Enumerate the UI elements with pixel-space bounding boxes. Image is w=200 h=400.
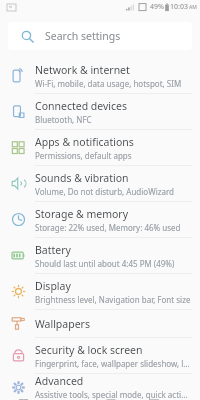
- staticText: 10:03: [170, 2, 188, 12]
- button[interactable]: Display: [0, 274, 200, 309]
- staticText: Apps & notifications: [35, 135, 134, 149]
- staticText: Should last until about 4:45 PM (49%): [35, 258, 175, 269]
- staticText: Advanced: [35, 374, 84, 388]
- button[interactable]: Search: [8, 22, 192, 50]
- button[interactable]: Apps & notifications: [0, 130, 200, 165]
- staticText: Fingerprint, face, wallpaper slideshow, …: [35, 358, 192, 369]
- staticText: Bluetooth, NFC: [35, 114, 92, 125]
- staticText: Wallpapers: [35, 317, 90, 331]
- button[interactable]: Sounds & vibration: [0, 166, 200, 201]
- staticText: Search settings: [45, 29, 121, 43]
- staticText: Display: [35, 279, 71, 293]
- button[interactable]: Battery: [0, 238, 200, 273]
- staticText: Permissions, default apps: [35, 150, 132, 161]
- button[interactable]: Wallpapers: [0, 310, 200, 337]
- staticText: 49%: [150, 2, 164, 12]
- staticText: Security & lock screen: [35, 343, 143, 357]
- button[interactable]: Storage & memory: [0, 202, 200, 237]
- staticText: Network & internet: [35, 63, 130, 77]
- button[interactable]: Advanced: [0, 374, 200, 400]
- button[interactable]: Security & lock screen: [0, 338, 200, 373]
- button[interactable]: Connected devices: [0, 94, 200, 129]
- staticText: Battery: [35, 243, 71, 257]
- staticText: Sounds & vibration: [35, 171, 129, 185]
- staticText: Assistive tools, special mode, quick act…: [35, 389, 192, 400]
- staticText: Brightness level, Navigation bar, Font s…: [35, 294, 191, 305]
- staticText: Connected devices: [35, 99, 128, 113]
- staticText: Volume, Do not disturb, AudioWizard: [35, 186, 175, 197]
- staticText: Storage & memory: [35, 207, 129, 221]
- staticText: Wi-Fi, mobile, data usage, hotspot, SIM: [35, 78, 182, 89]
- other: Search: [21, 30, 34, 43]
- staticText: Storage: 22% used, Memory: 46% used: [35, 222, 181, 233]
- button[interactable]: Network & internet: [0, 58, 200, 93]
- staticText: AM: [189, 4, 197, 11]
